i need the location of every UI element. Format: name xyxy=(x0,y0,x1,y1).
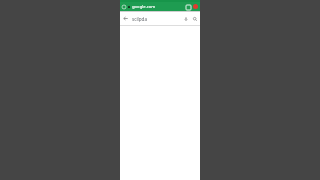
button[interactable]: Back xyxy=(120,12,200,25)
button[interactable]: Voice search xyxy=(182,15,189,22)
staticText: google.com xyxy=(132,4,156,10)
button[interactable]: Back xyxy=(122,15,129,22)
button[interactable]: More options xyxy=(192,3,199,10)
staticText: scilpda xyxy=(132,16,148,22)
button[interactable]: google.com xyxy=(128,3,185,10)
button[interactable]: Home xyxy=(121,4,127,10)
button[interactable]: Search xyxy=(191,15,198,22)
button[interactable]: Tabs xyxy=(185,4,191,10)
